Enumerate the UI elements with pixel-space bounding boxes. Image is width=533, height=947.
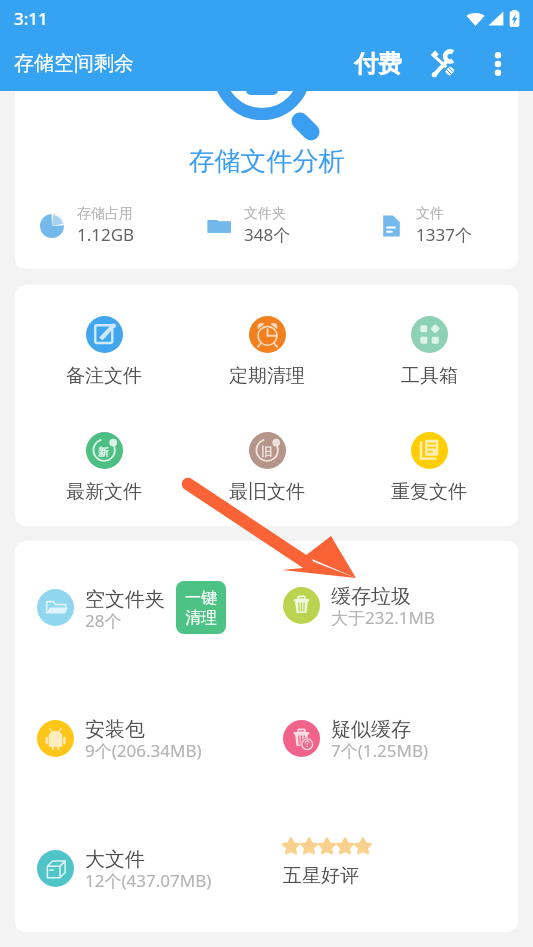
staticText: 旧 (261, 445, 272, 459)
staticText: 文件夹 (244, 205, 286, 223)
staticText: 新 (98, 445, 109, 459)
staticText: 存储空间剩余 (14, 51, 134, 76)
staticText: 五星好评 (283, 864, 359, 888)
button[interactable]: 旧 (229, 432, 305, 504)
button[interactable]: 备注文件 (66, 316, 142, 388)
staticText: 28个 (85, 609, 122, 632)
button[interactable]: More options (474, 40, 522, 88)
staticText: 文件 (416, 205, 444, 223)
staticText: 12个(437.07MB) (85, 869, 212, 892)
staticText: 付费 (354, 49, 402, 79)
staticText: 1.12GB (77, 223, 135, 246)
staticText: 9个(206.34MB) (85, 739, 202, 762)
staticText: 重复文件 (391, 480, 467, 504)
staticText: 疑似缓存 (331, 717, 411, 742)
button[interactable]: 付费 (346, 41, 410, 87)
staticText: 3:11 (14, 7, 48, 30)
staticText: 最新文件 (66, 480, 142, 504)
staticText: 7个(1.25MB) (331, 739, 429, 762)
staticText: 存储占用 (77, 205, 133, 223)
staticText: 大文件 (85, 847, 145, 872)
button[interactable]: 定期清理 (229, 316, 305, 388)
button[interactable]: 一键 (176, 581, 226, 634)
staticText: 最旧文件 (229, 480, 305, 504)
button[interactable]: 新 (66, 432, 142, 504)
staticText: 存储文件分析 (15, 145, 518, 178)
staticText: 空文件夹 (85, 587, 165, 612)
staticText: 安装包 (85, 717, 145, 742)
staticText: 大于232.1MB (331, 606, 435, 629)
staticText: 备注文件 (66, 364, 142, 388)
button[interactable]: 疑似缓存 (283, 714, 429, 762)
staticText: 清理 (185, 608, 217, 628)
button[interactable]: 空文件夹 (37, 581, 226, 634)
staticText: 348个 (244, 223, 291, 246)
staticText: 1337个 (416, 223, 472, 246)
button[interactable]: 重复文件 (391, 432, 467, 504)
button[interactable]: 缓存垃圾 (283, 581, 435, 629)
staticText: 缓存垃圾 (331, 584, 411, 609)
button[interactable]: 大文件 (37, 844, 212, 892)
button[interactable]: 五星好评 (283, 838, 373, 888)
staticText: 定期清理 (229, 364, 305, 388)
button[interactable]: 工具箱 (391, 316, 467, 388)
staticText: 工具箱 (401, 364, 458, 388)
button[interactable]: 安装包 (37, 714, 202, 762)
button[interactable]: Tools (410, 36, 474, 91)
staticText: 一键 (185, 588, 217, 608)
